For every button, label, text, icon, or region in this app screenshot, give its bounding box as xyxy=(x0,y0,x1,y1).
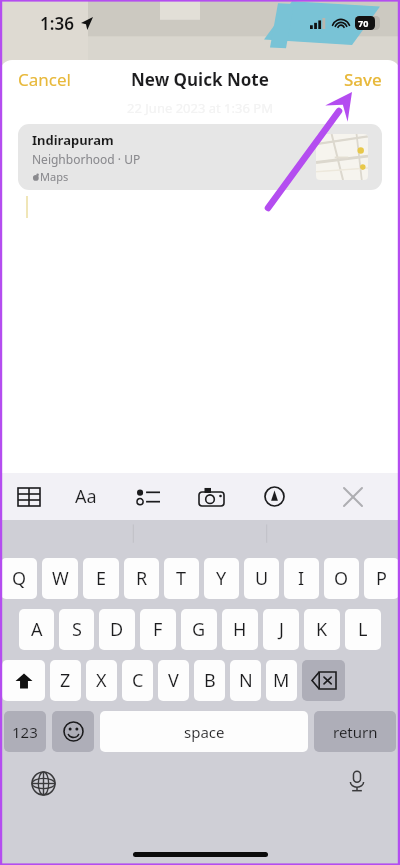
staticText: P xyxy=(376,566,387,591)
staticText: 70 xyxy=(358,17,369,29)
button[interactable]: W xyxy=(42,558,78,599)
staticText: K xyxy=(316,617,328,642)
button[interactable]: Backspace xyxy=(302,660,345,701)
button[interactable]: Camera xyxy=(180,473,243,520)
button[interactable]: R xyxy=(124,558,159,599)
staticText: Save xyxy=(344,68,382,91)
staticText: O xyxy=(334,566,349,591)
button[interactable]: Z xyxy=(50,660,81,701)
staticText: W xyxy=(52,566,69,591)
button[interactable]: Q xyxy=(1,558,37,599)
staticText: T xyxy=(176,566,187,591)
staticText: Y xyxy=(216,566,227,591)
staticText: Cancel xyxy=(18,68,71,91)
button[interactable]: V xyxy=(158,660,189,701)
button[interactable]: Shift xyxy=(2,660,45,701)
button[interactable]: Markup xyxy=(243,473,305,520)
staticText: return xyxy=(333,722,378,742)
button[interactable]: return xyxy=(314,711,396,752)
button[interactable]: I xyxy=(284,558,319,599)
button[interactable]: Indirapuram xyxy=(18,124,382,190)
staticText: A xyxy=(31,617,43,642)
staticText: U xyxy=(255,566,269,591)
button[interactable]: Cancel xyxy=(0,62,89,97)
button[interactable]: O xyxy=(324,558,359,599)
staticText: L xyxy=(358,617,368,642)
button[interactable]: space xyxy=(100,711,308,752)
button[interactable]: D xyxy=(99,609,135,650)
staticText: I xyxy=(298,566,305,591)
staticText: J xyxy=(279,617,284,642)
staticText: 1:36 xyxy=(40,12,74,35)
staticText: S xyxy=(72,617,82,642)
button[interactable]: Dictation xyxy=(342,766,372,796)
staticText: B xyxy=(204,668,216,693)
button[interactable]: F xyxy=(140,609,176,650)
staticText: Maps xyxy=(40,169,69,184)
button[interactable]: C xyxy=(122,660,153,701)
button[interactable]: N xyxy=(230,660,261,701)
button[interactable]: G xyxy=(181,609,217,650)
staticText: 22 June 2023 at 1:36 PM xyxy=(127,99,273,117)
staticText: D xyxy=(110,617,124,642)
button[interactable]: Text format xyxy=(57,473,115,520)
button[interactable]: Checklist xyxy=(115,473,180,520)
button[interactable]: A xyxy=(19,609,54,650)
button[interactable]: J xyxy=(263,609,299,650)
staticText: Z xyxy=(60,668,71,693)
button[interactable]: Change keyboard xyxy=(28,768,58,798)
staticText: M xyxy=(273,668,290,693)
staticText: H xyxy=(233,617,247,642)
staticText: N xyxy=(239,668,253,693)
button[interactable]: Save xyxy=(326,62,400,97)
button[interactable]: Y xyxy=(204,558,239,599)
button[interactable]: S xyxy=(59,609,94,650)
staticText: space xyxy=(184,722,225,742)
staticText: New Quick Note xyxy=(131,68,269,91)
staticText: Neighborhood · UP xyxy=(32,151,141,167)
button[interactable]: L xyxy=(345,609,381,650)
button[interactable]: Close xyxy=(305,473,400,520)
button[interactable]: E xyxy=(83,558,119,599)
staticText: R xyxy=(136,566,148,591)
button[interactable]: B xyxy=(194,660,225,701)
staticText: V xyxy=(168,668,179,693)
staticText: C xyxy=(132,668,144,693)
button[interactable]: Emoji xyxy=(52,711,94,752)
button[interactable]: 123 xyxy=(4,711,46,752)
button[interactable]: Table xyxy=(0,473,57,520)
button[interactable]: K xyxy=(304,609,340,650)
button[interactable]: U xyxy=(244,558,279,599)
button[interactable]: X xyxy=(86,660,117,701)
staticText: Aa xyxy=(75,484,97,509)
button[interactable]: H xyxy=(222,609,258,650)
staticText: G xyxy=(192,617,206,642)
staticText: Indirapuram xyxy=(32,131,114,149)
staticText: F xyxy=(153,617,163,642)
staticText: Q xyxy=(12,566,27,591)
button[interactable]: M xyxy=(266,660,297,701)
button[interactable]: P xyxy=(364,558,399,599)
staticText: E xyxy=(96,566,107,591)
staticText: 123 xyxy=(12,722,38,742)
button[interactable]: T xyxy=(164,558,199,599)
staticText: X xyxy=(96,668,107,693)
